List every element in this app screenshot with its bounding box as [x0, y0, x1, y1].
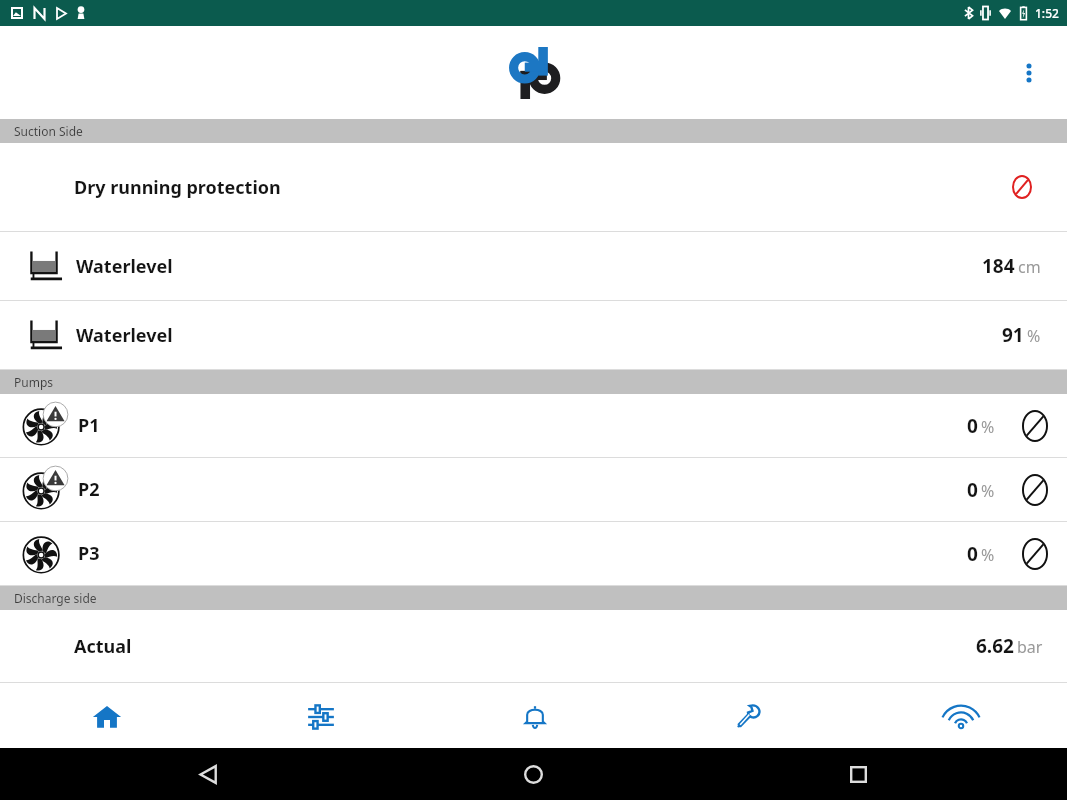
staticText: 6.62: [976, 633, 1014, 659]
button[interactable]: Alarms: [428, 686, 641, 748]
staticText: P1: [78, 413, 100, 438]
staticText: 0: [967, 413, 978, 439]
staticText: Pumps: [14, 374, 54, 390]
button[interactable]: Pump P2 disabled: [1015, 470, 1055, 510]
button[interactable]: Waterlevel: [0, 232, 1067, 300]
staticText: Waterlevel: [76, 323, 173, 348]
button[interactable]: P3: [0, 522, 1067, 585]
staticText: 91: [1002, 322, 1024, 348]
button[interactable]: Recent apps: [834, 750, 882, 798]
staticText: Dry running protection: [74, 175, 281, 200]
staticText: Actual: [74, 634, 132, 659]
staticText: 0: [967, 477, 978, 503]
button[interactable]: More options: [1005, 49, 1053, 97]
button[interactable]: Settings: [214, 686, 428, 748]
button[interactable]: Actual: [0, 610, 1067, 682]
button[interactable]: Dry running protection disabled: [1001, 166, 1043, 208]
staticText: Suction Side: [14, 123, 83, 139]
staticText: 0: [967, 541, 978, 567]
staticText: 184: [982, 253, 1015, 279]
staticText: %: [981, 416, 995, 438]
staticText: cm: [1018, 256, 1041, 278]
staticText: P2: [78, 477, 100, 502]
staticText: bar: [1017, 636, 1043, 658]
staticText: %: [981, 544, 995, 566]
button[interactable]: Connection: [854, 686, 1067, 748]
button[interactable]: Home: [0, 686, 214, 748]
staticText: P3: [78, 541, 100, 566]
button[interactable]: Pump P1 disabled: [1015, 406, 1055, 446]
staticText: %: [1027, 325, 1041, 347]
button[interactable]: P2: [0, 458, 1067, 521]
button[interactable]: Home: [509, 750, 557, 798]
button[interactable]: Pump P3 disabled: [1015, 534, 1055, 574]
button[interactable]: Waterlevel: [0, 301, 1067, 369]
staticText: Waterlevel: [76, 254, 173, 279]
staticText: Discharge side: [14, 590, 97, 606]
staticText: %: [981, 480, 995, 502]
button[interactable]: Dry running protection: [0, 143, 1067, 231]
button[interactable]: Service: [641, 686, 854, 748]
button[interactable]: P1: [0, 394, 1067, 457]
button[interactable]: Back: [184, 750, 232, 798]
staticText: 1:52: [1035, 5, 1059, 21]
